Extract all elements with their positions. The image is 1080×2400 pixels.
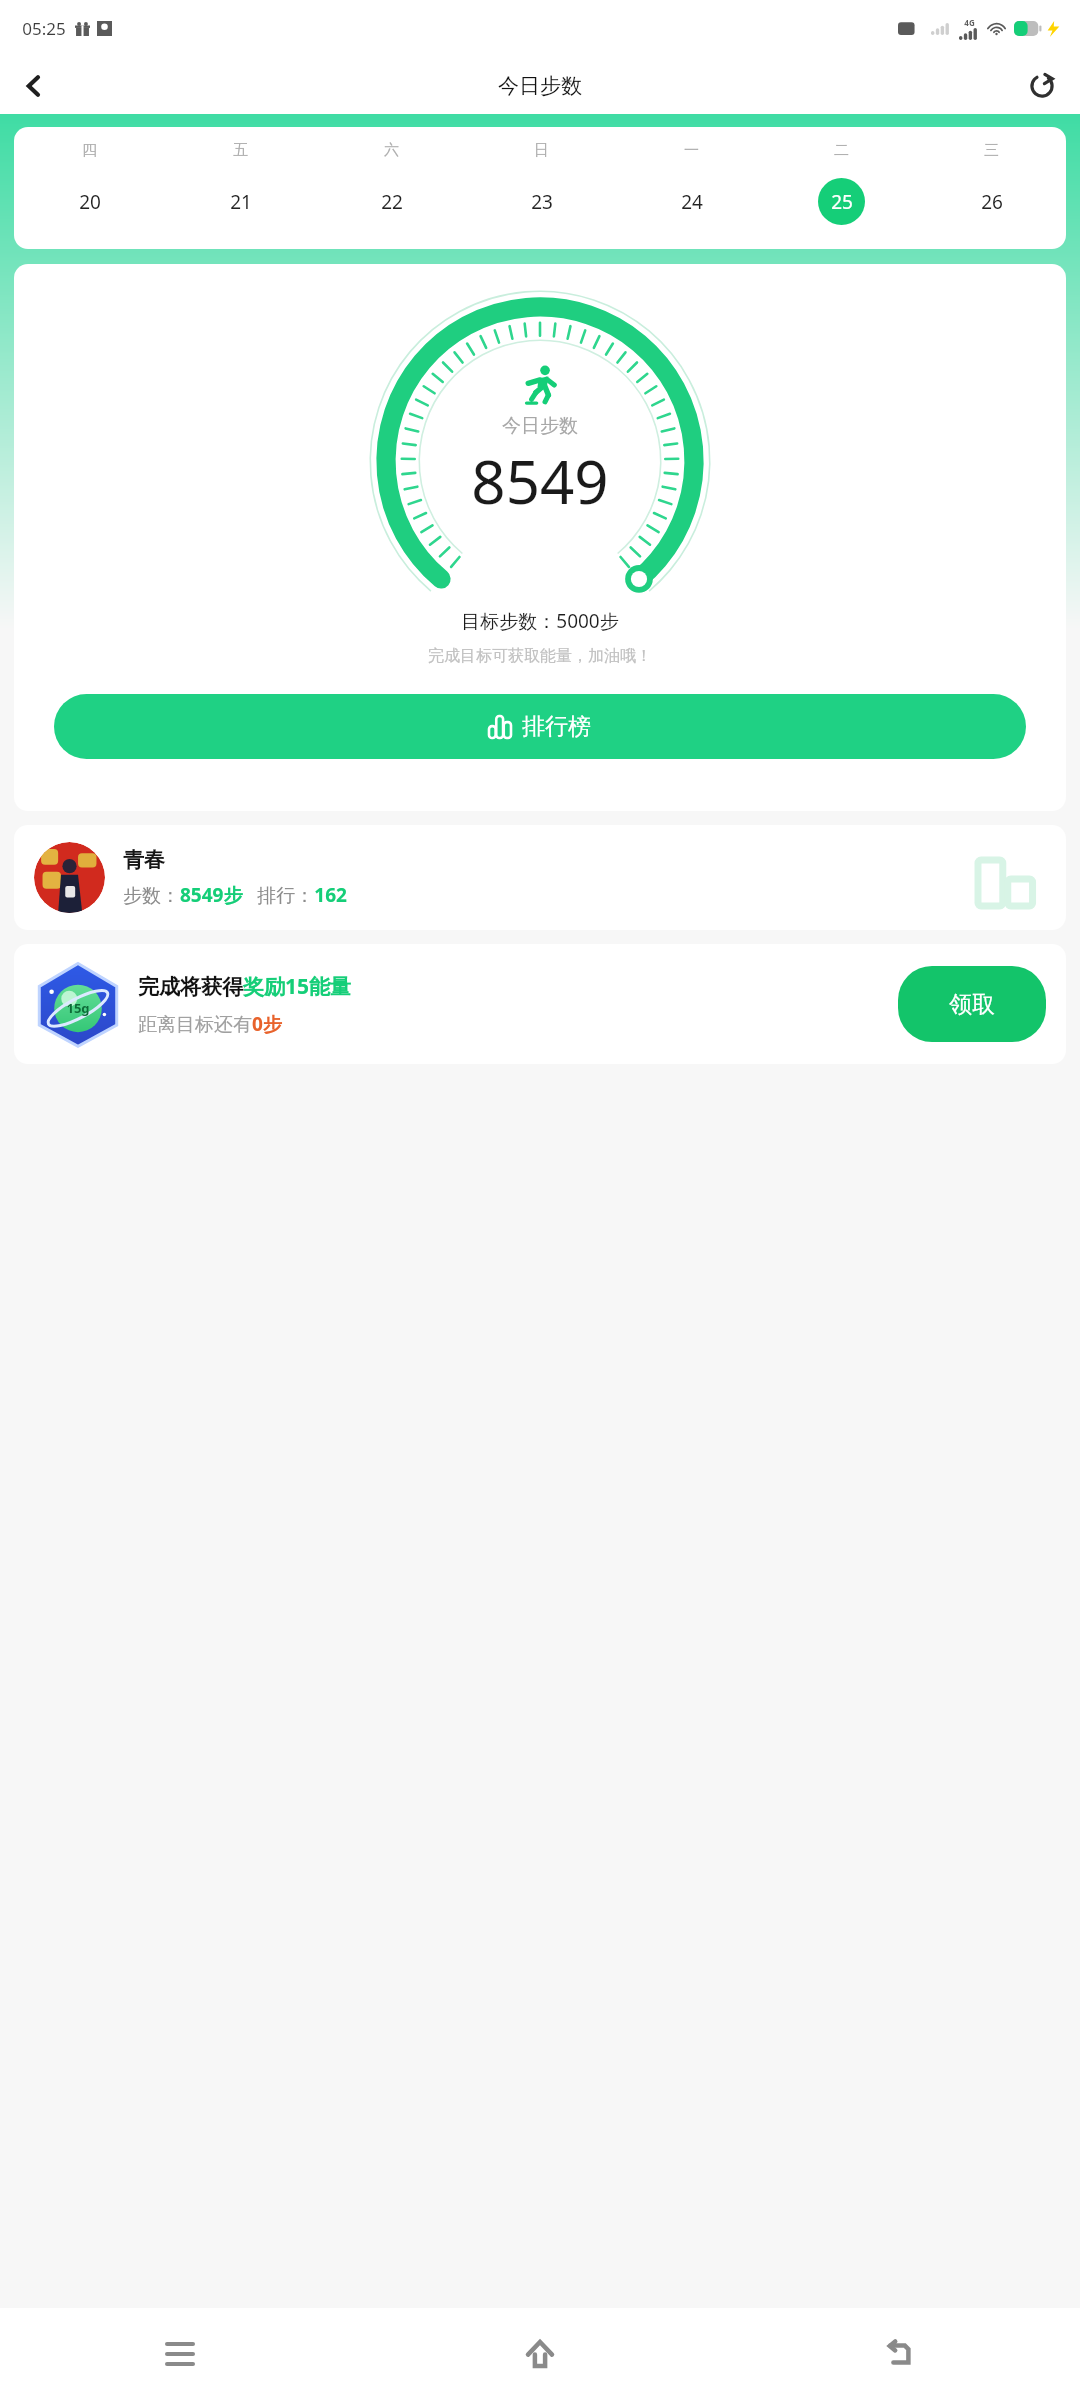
staticText: 24 [681, 189, 703, 215]
staticText: 今日步数 [498, 73, 582, 99]
button[interactable]: Back [720, 2308, 1080, 2400]
button[interactable]: Share [1018, 62, 1066, 110]
button[interactable]: 26 [968, 178, 1015, 225]
staticText: 六 [384, 141, 399, 160]
button[interactable]: 25 [818, 178, 865, 225]
staticText: 8549 [471, 440, 609, 522]
staticText: 4G [964, 17, 975, 28]
staticText: 20 [79, 189, 101, 215]
staticText: 步数：8549步 排行：162 [123, 882, 347, 908]
staticText: 日 [534, 141, 549, 160]
staticText: 完成将获得奖励15能量 [138, 972, 352, 1001]
staticText: 15g [66, 999, 90, 1017]
staticText: 今日步数 [502, 414, 578, 438]
staticText: 排行榜 [522, 712, 591, 741]
button[interactable]: Recent apps [0, 2308, 360, 2400]
staticText: 四 [82, 141, 97, 160]
staticText: 完成目标可获取能量，加油哦！ [428, 646, 652, 666]
staticText: 21 [230, 189, 252, 215]
staticText: 23 [531, 189, 553, 215]
button[interactable]: 四 [14, 127, 1066, 249]
button[interactable]: 排行榜 [54, 694, 1026, 759]
button[interactable]: Home [360, 2308, 720, 2400]
staticText: 领取 [949, 990, 995, 1019]
button[interactable]: 22 [368, 178, 415, 225]
staticText: 26 [981, 189, 1003, 215]
button[interactable]: Back [10, 62, 58, 110]
staticText: 05:25 [22, 17, 66, 40]
staticText: 22 [381, 189, 403, 215]
button[interactable]: 21 [217, 178, 264, 225]
staticText: 三 [984, 141, 999, 160]
button[interactable]: 23 [518, 178, 565, 225]
staticText: 目标步数：5000步 [461, 608, 619, 634]
staticText: 二 [834, 141, 849, 160]
staticText: 25 [831, 189, 853, 215]
button[interactable]: 领取 [898, 966, 1046, 1042]
staticText: 青春 [123, 847, 165, 873]
button[interactable]: 20 [66, 178, 113, 225]
button[interactable]: 24 [668, 178, 715, 225]
staticText: 距离目标还有0步 [138, 1011, 282, 1037]
staticText: 五 [233, 141, 248, 160]
button[interactable]: 青春 [14, 825, 1066, 930]
staticText: 一 [684, 141, 699, 160]
